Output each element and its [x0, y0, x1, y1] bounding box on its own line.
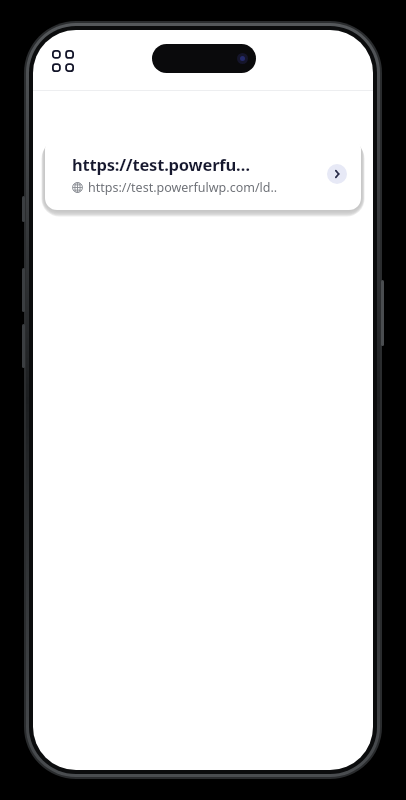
button[interactable]: Apps: [52, 50, 74, 72]
staticText: https://test.powerfu…: [72, 153, 250, 175]
staticText: https://test.powerfulwp.com/ld..: [88, 179, 278, 196]
button[interactable]: Open link: [327, 164, 347, 184]
button[interactable]: https://test.powerfu…: [45, 138, 361, 210]
